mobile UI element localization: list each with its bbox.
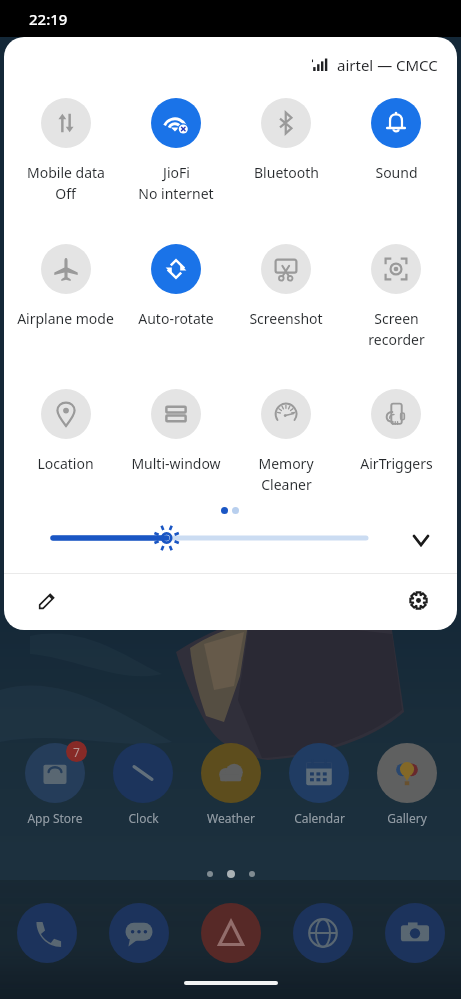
button[interactable]: Browser <box>293 903 353 963</box>
button[interactable]: Airplane mode <box>10 244 121 328</box>
button[interactable]: 7 <box>10 739 99 826</box>
staticText: No internet <box>138 184 214 203</box>
button[interactable]: Clock <box>99 739 187 826</box>
staticText: airtel — CMCC <box>337 55 438 75</box>
staticText: Bluetooth <box>254 163 319 182</box>
button[interactable]: Bluetooth <box>231 98 341 182</box>
staticText: Calendar <box>294 810 345 826</box>
button[interactable]: JioFi <box>121 98 231 203</box>
button[interactable]: Weather <box>187 739 275 826</box>
staticText: Memory <box>258 454 314 473</box>
button[interactable]: Messages <box>109 903 169 963</box>
button[interactable]: Calendar <box>275 739 363 826</box>
staticText: Airplane mode <box>17 309 114 328</box>
button[interactable]: Screenshot <box>231 244 341 328</box>
staticText: Multi-window <box>131 454 221 473</box>
button[interactable]: Brightness <box>39 520 376 556</box>
button[interactable]: Settings <box>396 578 440 622</box>
button[interactable]: Memory <box>231 389 341 494</box>
button[interactable]: Assistant <box>201 903 261 963</box>
staticText: App Store <box>27 810 83 826</box>
staticText: JioFi <box>163 163 190 182</box>
staticText: Gallery <box>387 810 427 826</box>
button[interactable]: Gallery <box>363 739 451 826</box>
staticText: AirTriggers <box>360 454 433 473</box>
staticText: Mobile data <box>27 163 105 182</box>
button[interactable]: Edit <box>25 578 69 622</box>
button[interactable]: AirTriggers <box>341 389 451 473</box>
button[interactable]: Phone <box>17 903 77 963</box>
button[interactable]: Location <box>10 389 121 473</box>
staticText: Location <box>37 454 94 473</box>
staticText: Sound <box>375 163 418 182</box>
staticText: Cleaner <box>261 475 312 494</box>
button[interactable]: Expand <box>401 520 441 560</box>
button[interactable]: Multi-window <box>121 389 231 473</box>
staticText: 22:19 <box>29 9 68 29</box>
staticText: Clock <box>128 810 159 826</box>
button[interactable]: Screen <box>341 244 451 349</box>
staticText: 7 <box>73 744 80 760</box>
staticText: Screen <box>374 309 419 328</box>
staticText: Off <box>55 184 76 203</box>
staticText: Screenshot <box>249 309 323 328</box>
button[interactable]: Camera <box>385 903 445 963</box>
button[interactable]: Sound <box>341 98 451 182</box>
button[interactable]: Mobile data <box>10 98 121 203</box>
staticText: recorder <box>368 330 425 349</box>
staticText: Auto-rotate <box>138 309 214 328</box>
button[interactable]: Auto-rotate <box>121 244 231 328</box>
staticText: Weather <box>207 810 255 826</box>
